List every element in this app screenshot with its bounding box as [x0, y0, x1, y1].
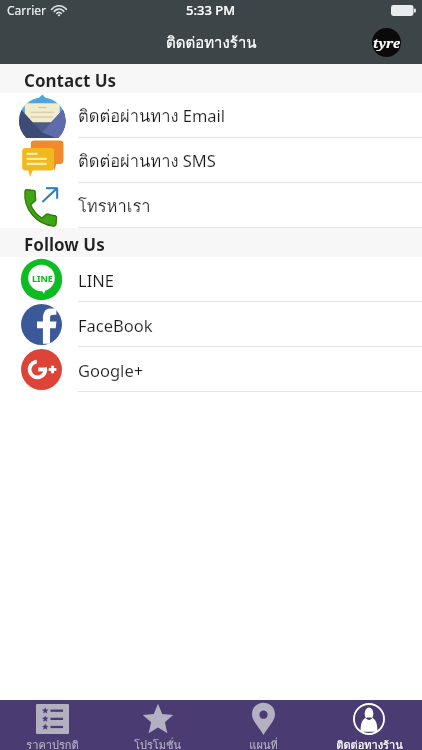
staticText: ติดต่อผ่านทาง SMS: [78, 148, 216, 174]
staticText: FaceBook: [78, 314, 153, 336]
staticText: Follow Us: [24, 233, 105, 256]
staticText: Google+: [78, 359, 144, 381]
staticText: LINE: [32, 272, 53, 284]
staticText: ราคาปรกติ: [26, 736, 79, 750]
staticText: Carrier: [7, 2, 47, 18]
staticText: Contact Us: [24, 69, 117, 92]
staticText: ติดต่อทางร้าน: [166, 31, 257, 55]
button[interactable]: Google+: [0, 347, 422, 392]
staticText: LINE: [78, 269, 114, 291]
button[interactable]: Shop logo: [372, 28, 401, 57]
button[interactable]: Contact us: [316, 700, 422, 750]
staticText: ติดต่อผ่านทาง Email: [78, 103, 226, 129]
staticText: โทรหาเรา: [78, 193, 151, 219]
staticText: 5:33 PM: [186, 1, 236, 19]
button[interactable]: Promotions: [105, 700, 210, 750]
staticText: แผนที่: [249, 736, 278, 750]
staticText: tyre: [373, 34, 400, 52]
button[interactable]: Map: [210, 700, 316, 750]
staticText: ติดต่อทางร้าน: [336, 736, 403, 750]
button[interactable]: ติดต่อผ่านทาง Email: [0, 93, 422, 138]
staticText: โปรโมชั่น: [134, 736, 181, 750]
button[interactable]: Normal prices: [0, 700, 105, 750]
button[interactable]: LINE: [0, 257, 422, 302]
button[interactable]: ติดต่อผ่านทาง SMS: [0, 138, 422, 183]
button[interactable]: โทรหาเรา: [0, 183, 422, 228]
button[interactable]: FaceBook: [0, 302, 422, 347]
